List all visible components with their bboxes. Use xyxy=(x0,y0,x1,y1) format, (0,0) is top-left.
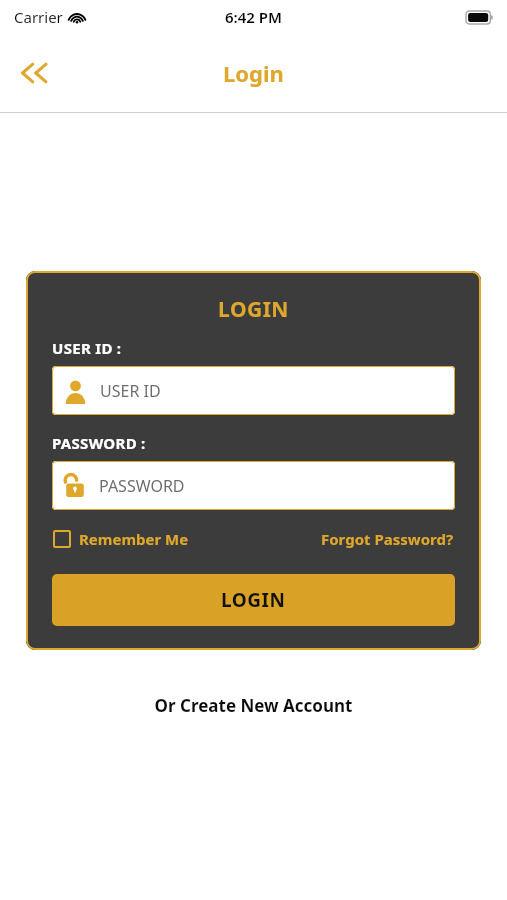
staticText: 6:42 PM xyxy=(225,7,282,27)
button[interactable]: LOGIN xyxy=(52,574,455,626)
button[interactable]: USER ID xyxy=(52,366,455,415)
staticText: LOGIN xyxy=(52,295,455,324)
staticText: Remember Me xyxy=(79,529,189,549)
staticText: PASSWORD : xyxy=(52,433,146,453)
button[interactable]: Back xyxy=(8,47,60,99)
staticText: Login xyxy=(223,58,284,88)
button[interactable]: Forgot Password? xyxy=(320,526,455,552)
staticText: PASSWORD xyxy=(99,475,185,497)
staticText: Carrier xyxy=(14,7,63,27)
button[interactable]: PASSWORD xyxy=(52,461,455,510)
button[interactable]: Or Create New Account xyxy=(0,690,507,721)
button[interactable]: Remember Me xyxy=(52,526,190,552)
staticText: USER ID xyxy=(100,380,161,402)
staticText: USER ID : xyxy=(52,338,122,358)
staticText: LOGIN xyxy=(221,587,286,613)
